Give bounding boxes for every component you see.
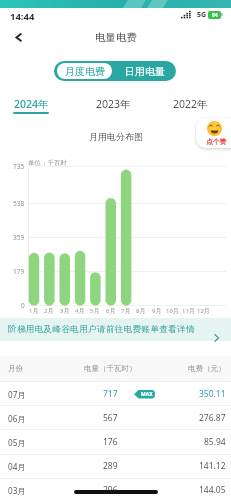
staticText: 06月	[8, 413, 26, 424]
staticText: 7月	[121, 307, 131, 315]
staticText: 电费（元）	[188, 364, 226, 373]
staticText: 月份	[8, 364, 23, 373]
staticText: 2022年	[173, 97, 208, 111]
button[interactable]	[8, 26, 30, 48]
staticText: 538	[13, 199, 25, 208]
staticText: 12月	[197, 307, 210, 315]
staticText: 月度电费	[65, 65, 105, 78]
staticText: 2023年	[96, 97, 131, 111]
button[interactable]	[0, 479, 231, 500]
staticText: 07月	[8, 389, 26, 400]
button[interactable]: 月度电费	[57, 63, 112, 79]
staticText: 14:44	[10, 10, 35, 22]
staticText: 03月	[8, 485, 26, 496]
button[interactable]: 2023年	[92, 96, 134, 111]
staticText: 735	[13, 162, 25, 171]
button[interactable]: 2022年	[169, 96, 211, 111]
staticText: 296	[103, 484, 118, 496]
staticText: 94	[212, 12, 218, 19]
staticText: 176	[103, 436, 118, 448]
button[interactable]: 日用电量	[116, 63, 174, 79]
staticText: 月用电分布图	[89, 131, 143, 142]
staticText: 11月	[182, 307, 195, 315]
button[interactable]	[0, 382, 231, 406]
button[interactable]	[0, 454, 231, 478]
staticText: MAX	[141, 391, 153, 398]
staticText: 179	[13, 267, 25, 276]
staticText: 5月	[90, 307, 100, 315]
staticText: 2024年	[14, 97, 49, 111]
staticText: 3月	[60, 307, 70, 315]
staticText: 阶梯用电及峰谷电用户请前往电费账单查看详情	[8, 324, 195, 335]
button[interactable]: 2024年	[10, 96, 52, 111]
staticText: 276.87	[199, 412, 226, 424]
staticText: 1月	[29, 307, 39, 315]
staticText: 04月	[8, 461, 26, 472]
button[interactable]	[0, 406, 231, 430]
staticText: 2月	[44, 307, 54, 315]
staticText: 0	[21, 301, 25, 310]
staticText: 4月	[75, 307, 85, 315]
staticText: 289	[103, 460, 118, 472]
staticText: 85.94	[204, 436, 226, 448]
staticText: 5G	[197, 10, 207, 20]
staticText: 6月	[106, 307, 116, 315]
staticText: 点个赞	[206, 137, 227, 146]
staticText: 电量电费	[95, 31, 137, 44]
staticText: 567	[103, 412, 118, 424]
staticText: 9月	[152, 307, 162, 315]
staticText: 日用电量	[125, 65, 165, 78]
staticText: 144.05	[199, 484, 226, 496]
staticText: 电量（千瓦时）	[84, 364, 137, 373]
staticText: 10月	[166, 307, 179, 315]
staticText: 141.12	[199, 460, 226, 472]
staticText: 单位：千瓦时	[28, 159, 67, 167]
staticText: 8月	[136, 307, 146, 315]
button[interactable]: 点个赞	[196, 118, 231, 148]
button[interactable]	[0, 430, 231, 454]
button[interactable]: 阶梯用电及峰谷电用户请前往电费账单查看详情	[0, 318, 231, 341]
staticText: 359	[13, 233, 25, 242]
staticText: 350.11	[199, 388, 226, 400]
staticText: 717	[103, 388, 118, 400]
staticText: 05月	[8, 437, 26, 448]
